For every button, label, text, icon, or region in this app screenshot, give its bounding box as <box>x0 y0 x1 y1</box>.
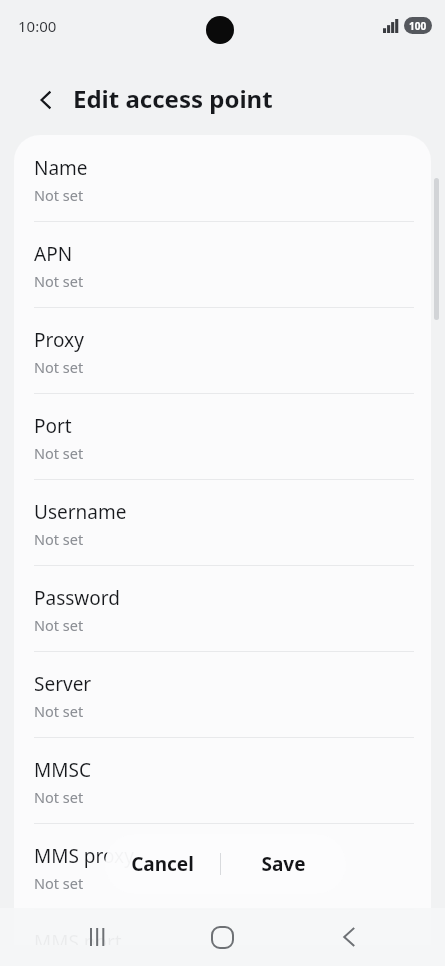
staticText: MMSC <box>34 757 91 783</box>
button[interactable]: Password <box>14 565 431 651</box>
button[interactable]: Port <box>14 393 431 479</box>
button[interactable]: Server <box>14 651 431 737</box>
staticText: Not set <box>34 787 84 807</box>
staticText: Not set <box>34 529 84 549</box>
staticText: 100 <box>409 19 427 33</box>
button[interactable]: Proxy <box>14 307 431 393</box>
staticText: Cancel <box>131 851 194 877</box>
staticText: Edit access point <box>73 82 273 115</box>
staticText: Not set <box>34 873 84 893</box>
staticText: Server <box>34 671 92 697</box>
button[interactable]: MMS proxy <box>14 823 431 909</box>
button[interactable]: MMSC <box>14 737 431 823</box>
button[interactable]: Save <box>221 834 346 894</box>
button[interactable]: MMS port <box>14 909 431 945</box>
staticText: Proxy <box>34 327 84 353</box>
staticText: 10:00 <box>18 16 57 36</box>
button[interactable]: Home <box>198 913 246 961</box>
button[interactable]: Recent apps <box>74 913 122 961</box>
staticText: Not set <box>34 615 84 635</box>
staticText: Not set <box>34 357 84 377</box>
staticText: Username <box>34 499 127 525</box>
staticText: MMS proxy <box>34 843 134 869</box>
staticText: Not set <box>34 443 84 463</box>
staticText: Password <box>34 585 120 611</box>
staticText: Not set <box>34 271 84 291</box>
staticText: APN <box>34 241 73 267</box>
staticText: Name <box>34 155 88 181</box>
button[interactable]: Cancel <box>105 834 220 894</box>
button[interactable]: Username <box>14 479 431 565</box>
button[interactable]: Back <box>22 76 70 124</box>
staticText: Port <box>34 413 72 439</box>
staticText: Not set <box>34 185 84 205</box>
button[interactable]: APN <box>14 221 431 307</box>
button[interactable]: Name <box>14 135 431 221</box>
staticText: Save <box>261 851 306 877</box>
staticText: Not set <box>34 701 84 721</box>
button[interactable]: Back <box>325 913 373 961</box>
staticText: MMS port <box>34 929 122 945</box>
